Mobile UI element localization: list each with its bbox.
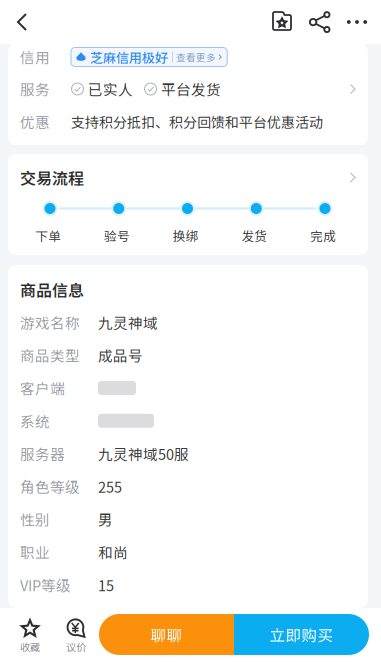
staticText: 255 (98, 476, 122, 497)
staticText: 聊聊 (150, 623, 182, 646)
staticText: 成品号 (98, 345, 143, 366)
staticText: 商品信息 (20, 278, 84, 301)
staticText: 完成 (310, 226, 336, 244)
staticText: 信用 (20, 46, 50, 67)
staticText: 角色等级 (20, 476, 80, 497)
button[interactable]: 收藏 (7, 608, 53, 663)
staticText: 商品类型 (20, 345, 80, 366)
staticText: VIP等级 (20, 574, 71, 595)
staticText: 换绑 (173, 226, 199, 244)
staticText: 已实人 (88, 78, 133, 99)
staticText: 芝麻信用极好 (90, 48, 168, 66)
staticText: 职业 (20, 541, 50, 562)
staticText: 查看更多 (176, 50, 216, 64)
staticText: 和尚 (98, 541, 128, 562)
button[interactable]: Share (301, 0, 339, 44)
button[interactable]: 服务 (20, 73, 356, 105)
staticText: 客户端 (20, 377, 65, 398)
staticText: 立即购买 (269, 623, 333, 646)
button[interactable]: 立即购买 (234, 614, 369, 655)
button[interactable]: 芝麻信用极好 (71, 47, 227, 66)
staticText: 验号 (104, 226, 130, 244)
button[interactable]: More (339, 0, 375, 44)
staticText: 游戏名称 (20, 312, 80, 333)
staticText: 交易流程 (20, 166, 84, 189)
staticText: 服务 (20, 78, 50, 99)
staticText: 收藏 (20, 639, 40, 654)
staticText: 九灵神域 (98, 312, 158, 333)
staticText: 优惠 (20, 111, 50, 132)
button[interactable]: 交易流程 (20, 154, 356, 201)
staticText: 服务器 (20, 443, 65, 464)
staticText: 发货 (242, 226, 268, 244)
staticText: 系统 (20, 410, 50, 431)
staticText: 平台发货 (161, 78, 221, 99)
staticText: 支持积分抵扣、积分回馈和平台优惠活动 (71, 111, 323, 132)
button[interactable]: 聊聊 (99, 614, 234, 655)
staticText: 九灵神域50服 (98, 443, 189, 464)
button[interactable]: Favorites (265, 0, 301, 44)
button[interactable]: Back (0, 0, 44, 44)
staticText: 15 (98, 574, 114, 595)
staticText: 下单 (35, 226, 61, 244)
staticText: 议价 (66, 639, 86, 654)
staticText: 男 (98, 509, 113, 530)
staticText: 性别 (20, 509, 50, 530)
button[interactable]: 议价 (53, 608, 99, 663)
